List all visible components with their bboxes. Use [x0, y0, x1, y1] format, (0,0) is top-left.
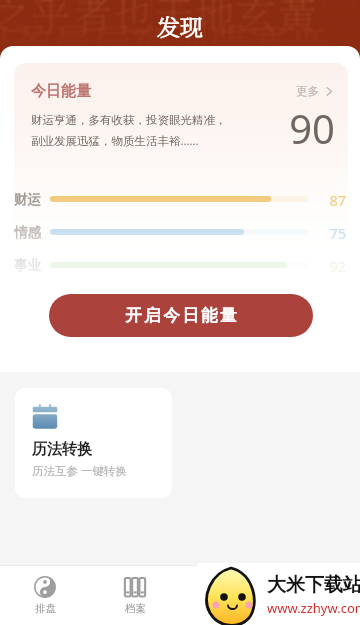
button[interactable]: 更多 [296, 84, 334, 98]
staticText: 排盘 [35, 602, 56, 615]
staticText: 87 [316, 190, 346, 210]
staticText: 历法互参 一键转换 [32, 463, 127, 479]
staticText: 历法转换 [32, 440, 92, 459]
staticText: 开启今日能量 [124, 305, 238, 326]
staticText: 发现 [305, 602, 326, 615]
staticText: 运势 [215, 602, 236, 615]
staticText: 财运 [14, 191, 41, 208]
staticText: 副业发展迅猛，物质生活丰裕…… [31, 133, 199, 149]
button[interactable]: 排盘 [0, 566, 90, 625]
staticText: 之乎者也天地玄黃宇宙洪荒日 [0, 0, 350, 41]
staticText: www.zzhyw.com [267, 599, 360, 617]
staticText: 情感 [14, 224, 41, 241]
other: 发现 [304, 576, 326, 598]
staticText: 财运亨通，多有收获，投资眼光精准， [31, 113, 227, 127]
staticText: 大米下载站 [267, 573, 360, 597]
button[interactable]: 档案 [90, 566, 180, 625]
staticText: 今日能量 [31, 82, 91, 101]
button[interactable]: 运势 [180, 566, 270, 625]
staticText: 90 [252, 101, 335, 155]
staticText: 月盈昃辰宿列張寒來暑往秋收 [0, 12, 336, 58]
staticText: 档案 [125, 602, 146, 615]
button[interactable]: 发现 [270, 566, 360, 625]
staticText: 事业 [14, 257, 41, 274]
other: 排盘 [34, 576, 56, 598]
button[interactable]: 开启今日能量 [49, 294, 313, 337]
staticText: 更多 [296, 84, 319, 98]
staticText: 发现 [157, 10, 203, 43]
other: 运势 [214, 576, 236, 598]
staticText: 92 [316, 256, 346, 276]
staticText: 75 [316, 223, 346, 243]
button[interactable]: 历法转换 [15, 388, 172, 498]
other: 档案 [124, 576, 146, 598]
